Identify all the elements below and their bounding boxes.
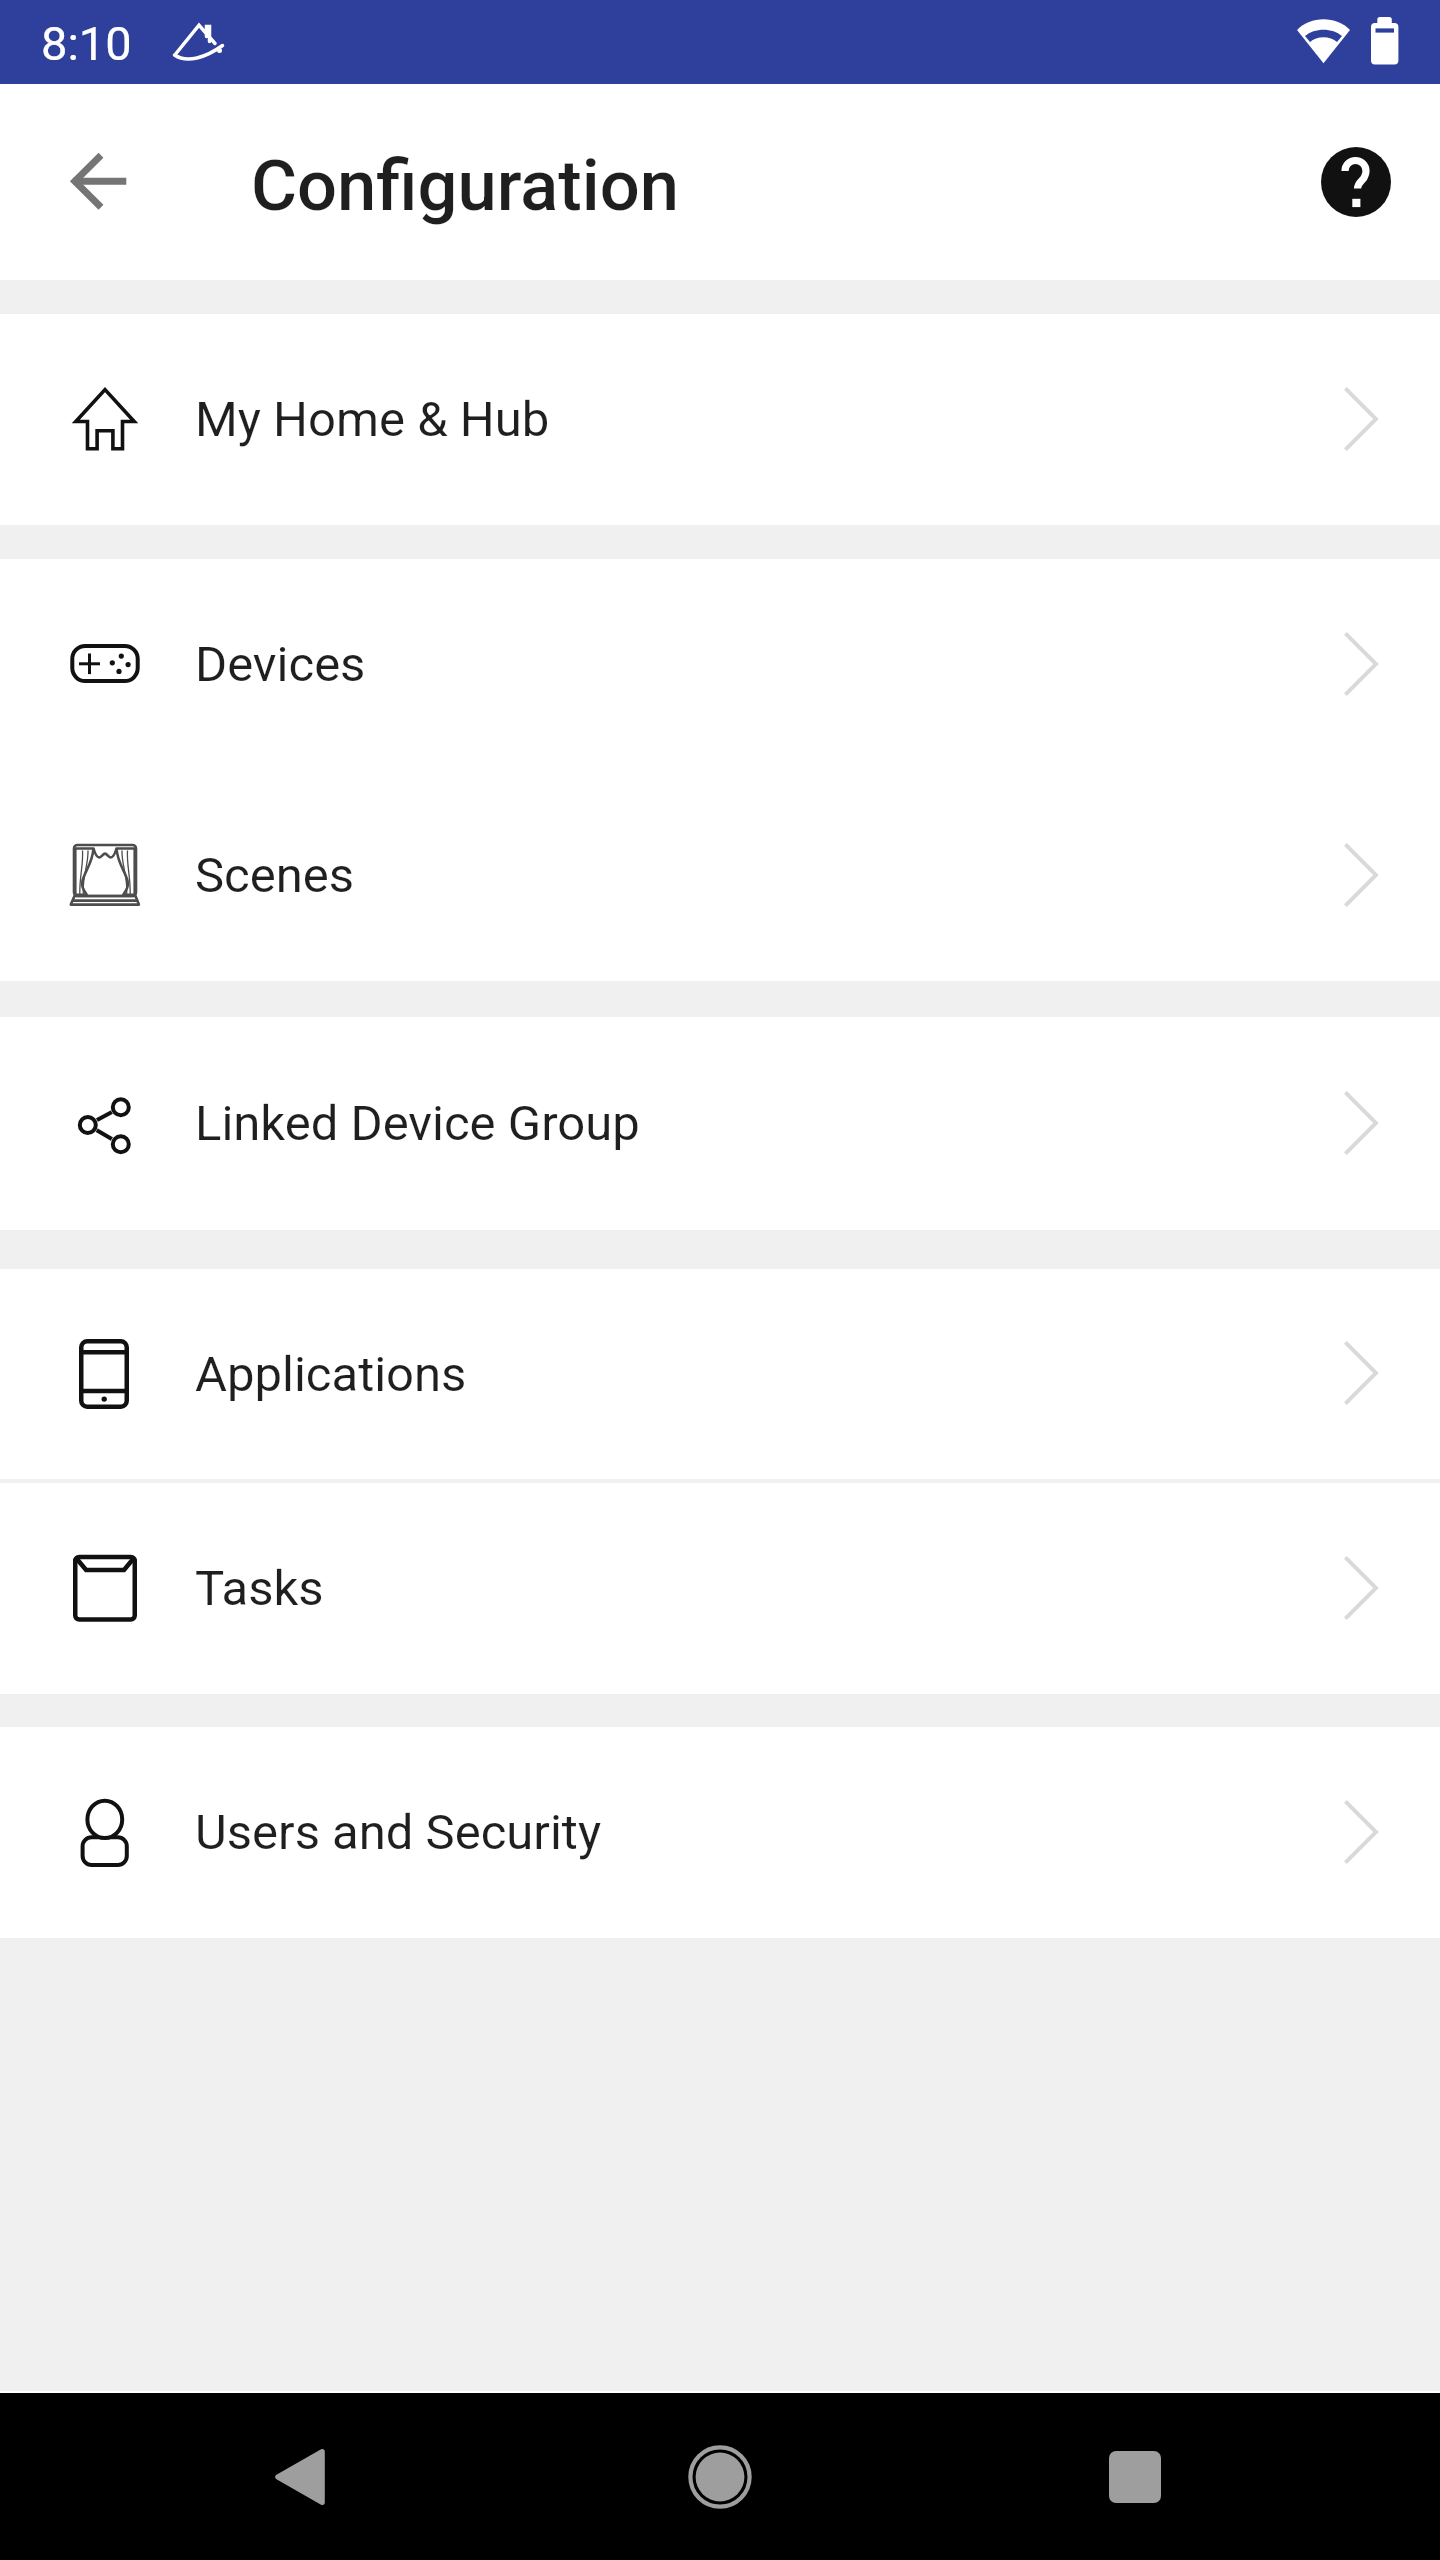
staticText: Linked Device Group bbox=[195, 1095, 640, 1152]
button[interactable]: Scenes bbox=[0, 770, 1440, 981]
staticText: Scenes bbox=[195, 847, 355, 904]
staticText: Users and Security bbox=[195, 1804, 602, 1861]
button[interactable]: Navigate up bbox=[56, 140, 140, 224]
button[interactable]: Linked Device Group bbox=[0, 1017, 1440, 1230]
button[interactable]: Back bbox=[240, 2417, 360, 2537]
staticText: 8:10 bbox=[41, 16, 132, 71]
staticText: Tasks bbox=[195, 1560, 324, 1617]
button[interactable]: My Home & Hub bbox=[0, 314, 1440, 525]
button[interactable]: Users and Security bbox=[0, 1727, 1440, 1938]
button[interactable]: Home bbox=[660, 2417, 780, 2537]
button[interactable]: Tasks bbox=[0, 1483, 1440, 1694]
button[interactable]: Devices bbox=[0, 559, 1440, 770]
button[interactable]: Applications bbox=[0, 1269, 1440, 1479]
button[interactable]: Help bbox=[1314, 140, 1398, 224]
staticText: Devices bbox=[195, 636, 366, 693]
staticText: Configuration bbox=[251, 145, 680, 228]
button[interactable]: Recent apps bbox=[1075, 2417, 1195, 2537]
staticText: My Home & Hub bbox=[195, 391, 550, 448]
staticText: Applications bbox=[195, 1346, 467, 1403]
